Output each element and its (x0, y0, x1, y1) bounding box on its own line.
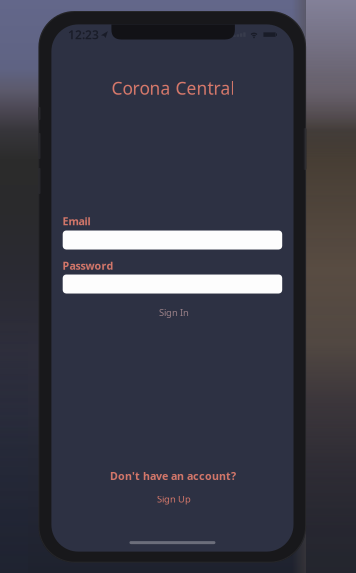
staticText: Sign In (159, 306, 189, 319)
staticText: Corona Central (111, 76, 234, 99)
button[interactable]: Sign In (136, 304, 212, 321)
button[interactable]: Sign Up (136, 490, 212, 508)
staticText: Sign Up (157, 493, 191, 505)
staticText: Password (62, 258, 113, 273)
staticText: 12:23 (68, 27, 99, 42)
staticText: Email (62, 214, 90, 228)
staticText: Don't have an account? (110, 469, 236, 483)
